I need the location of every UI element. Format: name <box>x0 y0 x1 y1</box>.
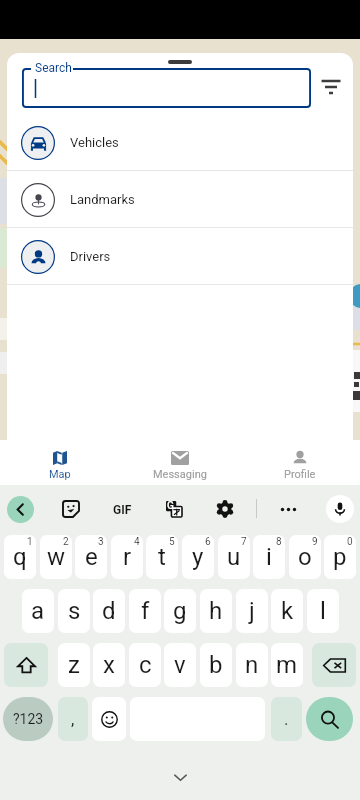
staticText: 4 <box>134 536 140 548</box>
staticText: s <box>68 597 81 625</box>
staticText: 7 <box>241 536 247 548</box>
staticText: b <box>209 651 223 679</box>
staticText: 9 <box>312 536 318 548</box>
staticText: x <box>103 651 115 679</box>
staticText: n <box>245 651 259 679</box>
staticText: m <box>276 651 298 679</box>
staticText: t <box>158 543 166 571</box>
staticText: 5 <box>169 536 175 548</box>
button[interactable]: x <box>93 643 125 687</box>
staticText: f <box>141 597 150 625</box>
button[interactable]: r <box>111 535 143 579</box>
button[interactable]: s <box>58 589 90 633</box>
staticText: o <box>298 543 312 571</box>
staticText: i <box>266 543 272 571</box>
button[interactable]: Map <box>0 440 120 485</box>
button[interactable]: u <box>218 535 250 579</box>
button[interactable]: Messaging <box>120 440 240 485</box>
button[interactable]: Settings <box>211 495 239 523</box>
staticText: Profile <box>284 468 316 481</box>
staticText: z <box>68 651 80 679</box>
staticText: a <box>31 597 45 625</box>
button[interactable]: Comma <box>58 697 88 741</box>
button[interactable]: z <box>58 643 90 687</box>
button[interactable]: y <box>182 535 214 579</box>
button[interactable]: n <box>236 643 268 687</box>
button[interactable]: Voice input <box>326 495 354 523</box>
staticText: l <box>320 597 326 625</box>
staticText: Map <box>49 468 71 481</box>
button[interactable]: g <box>164 589 196 633</box>
staticText: Vehicles <box>70 135 119 150</box>
button[interactable]: Back <box>7 496 34 523</box>
button[interactable]: h <box>200 589 232 633</box>
staticText: 6 <box>205 536 211 548</box>
button[interactable]: Backspace <box>312 643 356 687</box>
staticText: j <box>249 597 255 625</box>
staticText: Messaging <box>153 468 207 481</box>
button[interactable]: Symbols <box>3 697 53 741</box>
button[interactable]: Translate <box>160 495 188 523</box>
staticText: 8 <box>276 536 282 548</box>
staticText: u <box>227 543 241 571</box>
staticText: , <box>71 709 75 729</box>
staticText: 3 <box>98 536 104 548</box>
staticText: 0 <box>347 536 353 548</box>
staticText: h <box>209 597 223 625</box>
button[interactable]: t <box>146 535 178 579</box>
button[interactable]: f <box>129 589 161 633</box>
button[interactable]: Search <box>306 697 353 741</box>
button[interactable]: a <box>22 589 54 633</box>
staticText: GIF <box>113 503 132 517</box>
button[interactable]: p <box>324 535 356 579</box>
button[interactable]: Filter <box>309 66 353 110</box>
staticText: c <box>139 651 152 679</box>
staticText: q <box>13 543 27 571</box>
staticText: 2 <box>63 536 69 548</box>
button[interactable]: Profile <box>240 440 360 485</box>
button[interactable]: Emoji <box>92 697 126 741</box>
button[interactable]: c <box>129 643 161 687</box>
staticText: Drivers <box>70 249 111 264</box>
button[interactable]: m <box>271 643 303 687</box>
staticText: y <box>192 543 204 571</box>
button[interactable]: Hide keyboard <box>166 763 194 791</box>
staticText: ?123 <box>13 711 44 727</box>
staticText: g <box>173 597 187 625</box>
staticText: r <box>123 543 132 571</box>
button[interactable]: Period <box>271 697 302 741</box>
button[interactable]: GIF <box>108 495 137 524</box>
button[interactable]: More options <box>274 495 302 523</box>
staticText: Landmarks <box>70 192 135 207</box>
button[interactable]: k <box>271 589 303 633</box>
button[interactable]: b <box>200 643 232 687</box>
button[interactable]: Stickers <box>57 495 85 523</box>
staticText: k <box>281 597 294 625</box>
button[interactable]: l <box>307 589 339 633</box>
staticText: 1 <box>27 536 33 548</box>
button[interactable]: Landmarks <box>7 171 353 228</box>
staticText: e <box>85 543 98 571</box>
button[interactable]: j <box>236 589 268 633</box>
staticText: p <box>333 543 347 571</box>
staticText: v <box>174 651 186 679</box>
staticText: . <box>284 709 289 729</box>
button[interactable]: d <box>93 589 125 633</box>
staticText: G <box>167 500 174 512</box>
button[interactable]: q <box>4 535 36 579</box>
button[interactable]: v <box>164 643 196 687</box>
button[interactable]: Shift <box>4 643 48 687</box>
button[interactable]: w <box>40 535 72 579</box>
button[interactable]: Vehicles <box>7 114 353 171</box>
staticText: d <box>102 597 116 625</box>
button[interactable]: Search <box>22 68 311 108</box>
staticText: Search <box>35 61 72 75</box>
button[interactable]: Drivers <box>7 228 353 285</box>
button[interactable]: i <box>253 535 285 579</box>
button[interactable]: e <box>75 535 107 579</box>
staticText: w <box>47 543 66 571</box>
button[interactable]: o <box>289 535 321 579</box>
